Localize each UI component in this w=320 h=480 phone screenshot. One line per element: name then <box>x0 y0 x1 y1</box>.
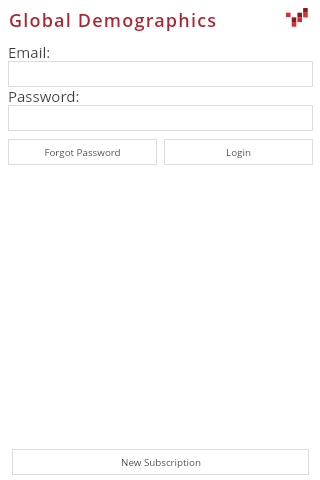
staticText: Password: <box>8 86 80 106</box>
button[interactable]: New Subscription <box>12 449 309 475</box>
staticText: Global Demographics <box>9 8 218 33</box>
button[interactable]: Global Demographics logo <box>284 6 310 32</box>
button[interactable]: Login <box>164 139 313 165</box>
button[interactable]: Forgot Password <box>8 139 157 165</box>
button[interactable]: Password input field <box>8 105 313 131</box>
button[interactable]: Email input field <box>8 61 313 87</box>
staticText: Email: <box>8 42 51 62</box>
staticText: Login <box>226 146 251 159</box>
staticText: New Subscription <box>121 456 201 469</box>
staticText: Forgot Password <box>44 146 121 159</box>
